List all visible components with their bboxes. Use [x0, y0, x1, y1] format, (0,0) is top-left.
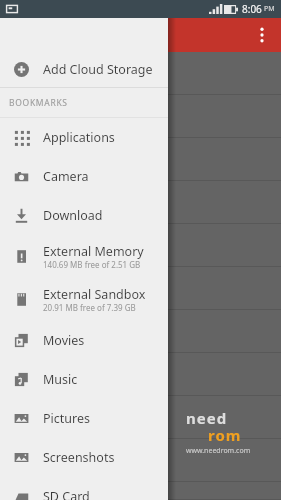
- staticText: Download: [43, 207, 103, 224]
- button[interactable]: Pictures: [0, 399, 168, 438]
- button[interactable]: External Sandbox: [0, 278, 168, 321]
- button[interactable]: Movies: [0, 321, 168, 360]
- button[interactable]: Music: [0, 360, 168, 399]
- staticText: External Sandbox: [43, 286, 146, 303]
- staticText: Pictures: [43, 410, 90, 427]
- staticText: Camera: [43, 168, 89, 185]
- button[interactable]: Applications: [0, 118, 168, 157]
- button[interactable]: External Memory: [0, 235, 168, 278]
- staticText: 140.69 MB free of 2.51 GB: [43, 259, 141, 270]
- staticText: PM: [264, 4, 275, 14]
- button[interactable]: Screenshots: [0, 438, 168, 477]
- staticText: Music: [43, 371, 78, 388]
- staticText: rom: [208, 425, 242, 445]
- staticText: 8:06: [242, 2, 262, 16]
- staticText: SD Card: [43, 488, 90, 500]
- button[interactable]: More options: [247, 20, 277, 50]
- staticText: 20.91 MB free of 7.39 GB: [43, 302, 136, 313]
- staticText: www.needrom.com: [186, 446, 251, 456]
- staticText: BOOKMARKS: [9, 97, 68, 109]
- button[interactable]: Camera: [0, 157, 168, 196]
- staticText: Movies: [43, 332, 85, 349]
- staticText: Screenshots: [43, 449, 115, 466]
- staticText: need: [186, 408, 228, 428]
- button[interactable]: SD Card: [0, 477, 168, 500]
- button[interactable]: Add Cloud Storage: [0, 52, 168, 87]
- staticText: External Memory: [43, 243, 144, 260]
- staticText: Applications: [43, 129, 115, 146]
- staticText: Add Cloud Storage: [43, 61, 153, 78]
- button[interactable]: Download: [0, 196, 168, 235]
